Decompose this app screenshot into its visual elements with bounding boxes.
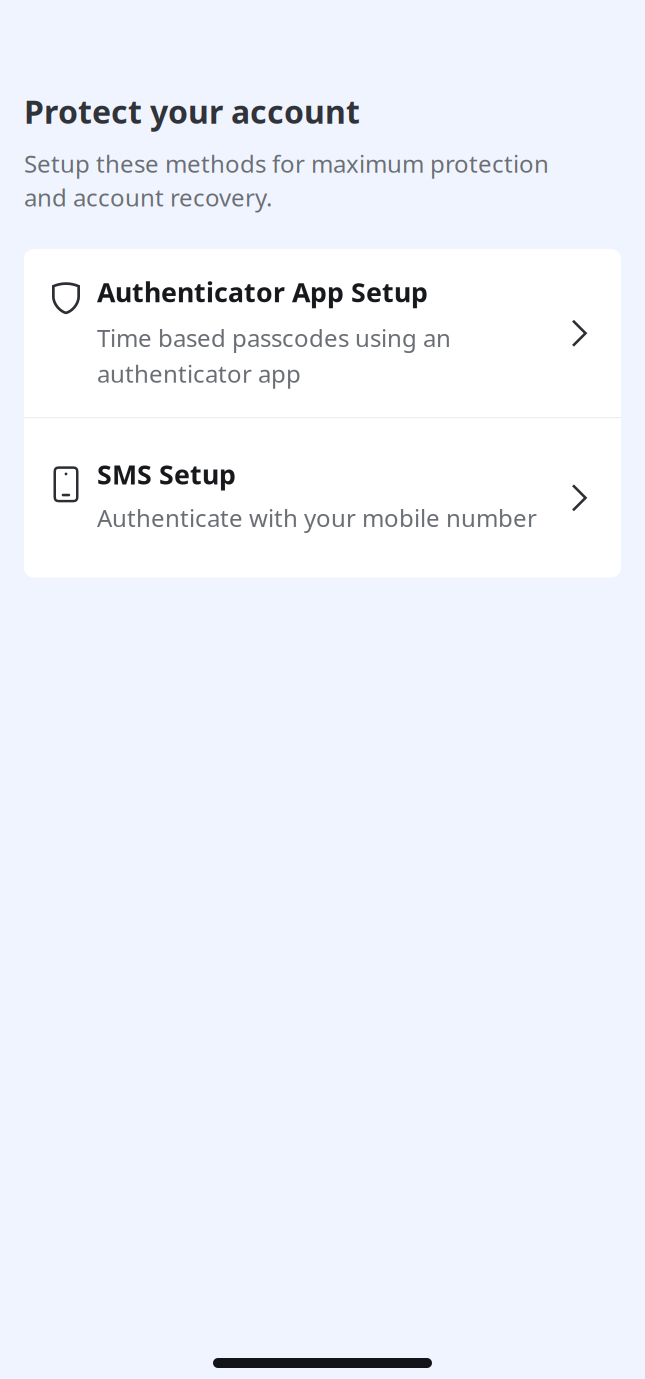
staticText: Time based passcodes using an authentica… bbox=[97, 322, 451, 389]
staticText: Authenticate with your mobile number bbox=[97, 502, 537, 534]
button[interactable]: Authenticator App Setup bbox=[24, 249, 621, 417]
staticText: SMS Setup bbox=[97, 456, 236, 492]
staticText: Setup these methods for maximum protecti… bbox=[24, 147, 549, 213]
staticText: Authenticator App Setup bbox=[97, 274, 428, 310]
staticText: Protect your account bbox=[24, 90, 360, 132]
button[interactable]: SMS Setup bbox=[24, 418, 621, 577]
